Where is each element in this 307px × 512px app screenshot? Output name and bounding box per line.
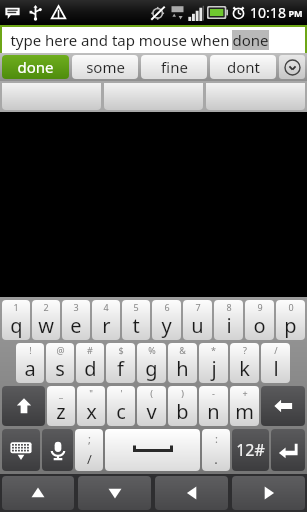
- button[interactable]: 8: [214, 300, 243, 340]
- button[interactable]: 9: [245, 300, 274, 340]
- button[interactable]: Voice input: [42, 429, 73, 471]
- button[interactable]: ;: [75, 429, 103, 471]
- staticText: 5: [133, 301, 139, 313]
- staticText: m: [235, 398, 254, 425]
- button[interactable]: Up: [2, 476, 74, 510]
- staticText: k: [239, 355, 250, 382]
- button[interactable]: 1: [2, 300, 30, 340]
- button[interactable]: 2: [32, 300, 60, 340]
- staticText: a: [24, 355, 36, 382]
- button[interactable]: (: [137, 386, 166, 426]
- staticText: p: [284, 312, 297, 339]
- button[interactable]: /: [261, 343, 290, 383]
- staticText: z: [56, 398, 66, 425]
- button[interactable]: some: [72, 55, 138, 79]
- staticText: 10:18: [250, 3, 286, 22]
- button[interactable]: fine: [141, 55, 207, 79]
- staticText: 9: [257, 301, 263, 313]
- staticText: e: [70, 312, 82, 339]
- staticText: 1: [13, 301, 19, 313]
- button[interactable]: Right: [232, 476, 305, 510]
- button[interactable]: Left: [155, 476, 228, 510]
- staticText: j: [211, 355, 217, 382]
- staticText: f: [117, 355, 124, 382]
- staticText: g: [145, 355, 158, 382]
- button[interactable]: Delete: [261, 386, 305, 426]
- staticText: r: [102, 312, 111, 339]
- staticText: u: [191, 312, 204, 339]
- button[interactable]: +: [230, 386, 259, 426]
- staticText: !: [29, 344, 32, 356]
- button[interactable]: 3: [62, 300, 90, 340]
- staticText: 3: [73, 301, 79, 313]
- staticText: 4: [103, 301, 109, 313]
- staticText: .: [214, 450, 218, 468]
- button[interactable]: Enter: [271, 429, 305, 471]
- staticText: @: [56, 344, 65, 356]
- staticText: /: [87, 450, 92, 468]
- button[interactable]: @: [46, 343, 74, 383]
- button[interactable]: Suggestion slot: [2, 83, 101, 110]
- button[interactable]: *: [199, 343, 228, 383]
- staticText: 7: [195, 301, 201, 313]
- staticText: q: [10, 312, 23, 339]
- staticText: some: [86, 57, 125, 77]
- button[interactable]: #: [76, 343, 104, 383]
- staticText: /: [274, 344, 278, 356]
- staticText: w: [38, 312, 54, 339]
- button[interactable]: %: [137, 343, 166, 383]
- button[interactable]: ': [107, 386, 135, 426]
- staticText: (: [150, 387, 153, 399]
- button[interactable]: ?: [230, 343, 259, 383]
- staticText: :: [215, 431, 218, 446]
- staticText: 12#: [236, 439, 265, 461]
- staticText: dont: [227, 57, 260, 77]
- button[interactable]: 12#: [232, 429, 269, 471]
- staticText: ': [120, 387, 123, 399]
- staticText: v: [146, 398, 157, 425]
- button[interactable]: !: [16, 343, 44, 383]
- button[interactable]: dont: [210, 55, 276, 79]
- staticText: #: [87, 344, 93, 356]
- button[interactable]: ": [77, 386, 105, 426]
- staticText: %: [148, 344, 156, 356]
- staticText: x: [86, 398, 97, 425]
- button[interactable]: Space: [105, 429, 200, 471]
- staticText: d: [84, 355, 97, 382]
- button[interactable]: Hide keyboard: [2, 429, 40, 471]
- staticText: c: [116, 398, 126, 425]
- button[interactable]: _: [47, 386, 75, 426]
- staticText: fine: [161, 57, 188, 77]
- button[interactable]: Suggestion slot: [206, 83, 305, 110]
- button[interactable]: Down: [78, 476, 151, 510]
- staticText: ": [89, 387, 93, 399]
- button[interactable]: 0: [276, 300, 305, 340]
- staticText: y: [161, 312, 172, 339]
- staticText: $: [118, 344, 124, 356]
- button[interactable]: done: [2, 55, 69, 79]
- staticText: 8: [226, 301, 232, 313]
- staticText: done: [17, 57, 54, 77]
- staticText: done: [232, 30, 269, 50]
- button[interactable]: $: [106, 343, 135, 383]
- button[interactable]: 6: [152, 300, 181, 340]
- button[interactable]: Shift: [2, 386, 45, 426]
- button[interactable]: Suggestion slot: [104, 83, 203, 110]
- button[interactable]: type here and tap mouse when: [2, 27, 305, 53]
- button[interactable]: -: [199, 386, 228, 426]
- staticText: t: [132, 312, 140, 339]
- staticText: 0: [288, 301, 294, 313]
- button[interactable]: &: [168, 343, 197, 383]
- button[interactable]: :: [202, 429, 230, 471]
- staticText: -: [212, 387, 215, 399]
- button[interactable]: 7: [183, 300, 212, 340]
- button[interactable]: ): [168, 386, 197, 426]
- staticText: ;: [88, 431, 91, 446]
- staticText: n: [207, 398, 220, 425]
- button[interactable]: More suggestions: [279, 55, 305, 79]
- staticText: 2: [43, 301, 49, 313]
- staticText: l: [273, 355, 279, 382]
- button[interactable]: 4: [92, 300, 120, 340]
- staticText: ?: [243, 344, 247, 356]
- button[interactable]: 5: [122, 300, 150, 340]
